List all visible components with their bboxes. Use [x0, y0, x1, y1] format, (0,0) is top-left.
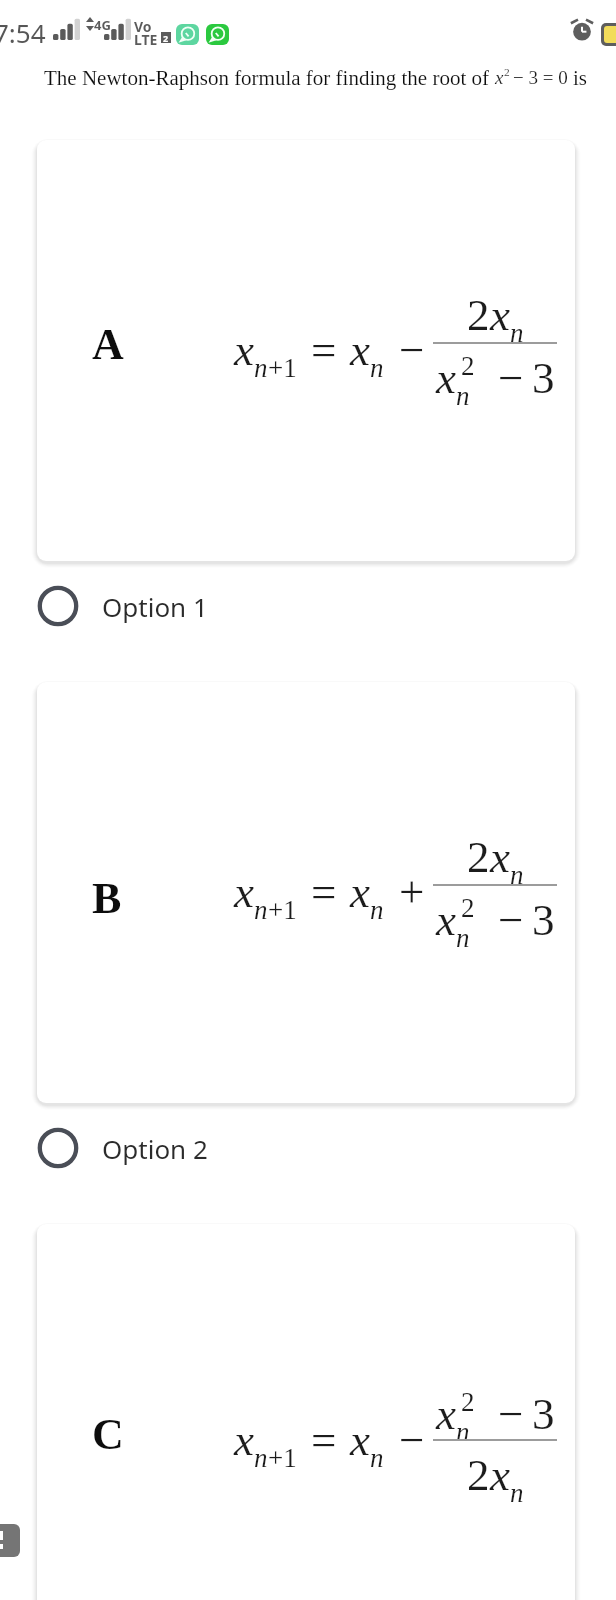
staticText: − — [399, 325, 425, 375]
staticText: 3 — [532, 353, 555, 403]
staticText: 4G — [94, 16, 111, 34]
staticText: x — [436, 895, 456, 945]
staticText: n — [370, 353, 384, 383]
staticText: n — [370, 895, 384, 925]
staticText: = — [311, 325, 337, 375]
staticText: 2 — [461, 893, 475, 923]
button[interactable]: Option 1 — [0, 573, 616, 639]
staticText: = — [311, 867, 337, 917]
staticText: 3 — [532, 1389, 555, 1439]
staticText: +1 — [268, 895, 297, 925]
staticText: x — [350, 1415, 370, 1465]
staticText: n — [510, 860, 524, 890]
staticText: 2 — [467, 832, 490, 882]
staticText: 2 — [461, 1387, 475, 1417]
staticText: Option 2 — [102, 1131, 208, 1166]
staticText: − — [399, 1415, 425, 1465]
staticText: x — [234, 1415, 254, 1465]
button[interactable]: C — [37, 1224, 575, 1600]
staticText: 2 — [163, 32, 169, 43]
staticText: x — [350, 325, 370, 375]
staticText: x — [495, 67, 504, 88]
staticText: A — [92, 320, 124, 369]
staticText: 2 — [467, 1450, 490, 1500]
staticText: n — [254, 353, 268, 383]
staticText: x — [490, 832, 510, 882]
staticText: 2 — [504, 66, 510, 79]
staticText: n — [510, 1478, 524, 1508]
staticText: +1 — [268, 1443, 297, 1473]
staticText: 2 — [461, 351, 475, 381]
staticText: x — [350, 867, 370, 917]
staticText: x — [490, 290, 510, 340]
staticText: 7:54 — [0, 15, 46, 50]
button[interactable]: Option 2 — [0, 1115, 616, 1181]
staticText: 3 — [532, 895, 555, 945]
staticText: n — [254, 1443, 268, 1473]
staticText: Vo — [134, 17, 152, 36]
staticText: x — [436, 353, 456, 403]
button[interactable]: A — [37, 140, 575, 561]
staticText: x — [436, 1389, 456, 1439]
staticText: − 3 = 0 — [513, 67, 568, 88]
staticText: n — [456, 381, 470, 411]
staticText: x — [234, 867, 254, 917]
staticText: +1 — [268, 353, 297, 383]
staticText: B — [92, 874, 122, 923]
staticText: n — [370, 1443, 384, 1473]
staticText: + — [399, 867, 425, 917]
staticText: n — [456, 923, 470, 953]
button[interactable]: B — [37, 682, 575, 1103]
staticText: Option 1 — [102, 589, 208, 624]
staticText: C — [92, 1410, 124, 1459]
staticText: x — [234, 325, 254, 375]
staticText: n — [254, 895, 268, 925]
staticText: − — [498, 353, 524, 403]
staticText: = — [311, 1415, 337, 1465]
staticText: n — [456, 1417, 470, 1447]
staticText: x — [490, 1450, 510, 1500]
staticText: 2 — [467, 290, 490, 340]
staticText: The Newton-Raphson formula for finding t… — [44, 66, 489, 89]
staticText: is — [573, 66, 588, 89]
staticText: − — [498, 895, 524, 945]
button[interactable]: Floating tool handle — [0, 1524, 20, 1557]
staticText: LTE — [134, 30, 158, 49]
staticText: − — [498, 1389, 524, 1439]
staticText: n — [510, 318, 524, 348]
